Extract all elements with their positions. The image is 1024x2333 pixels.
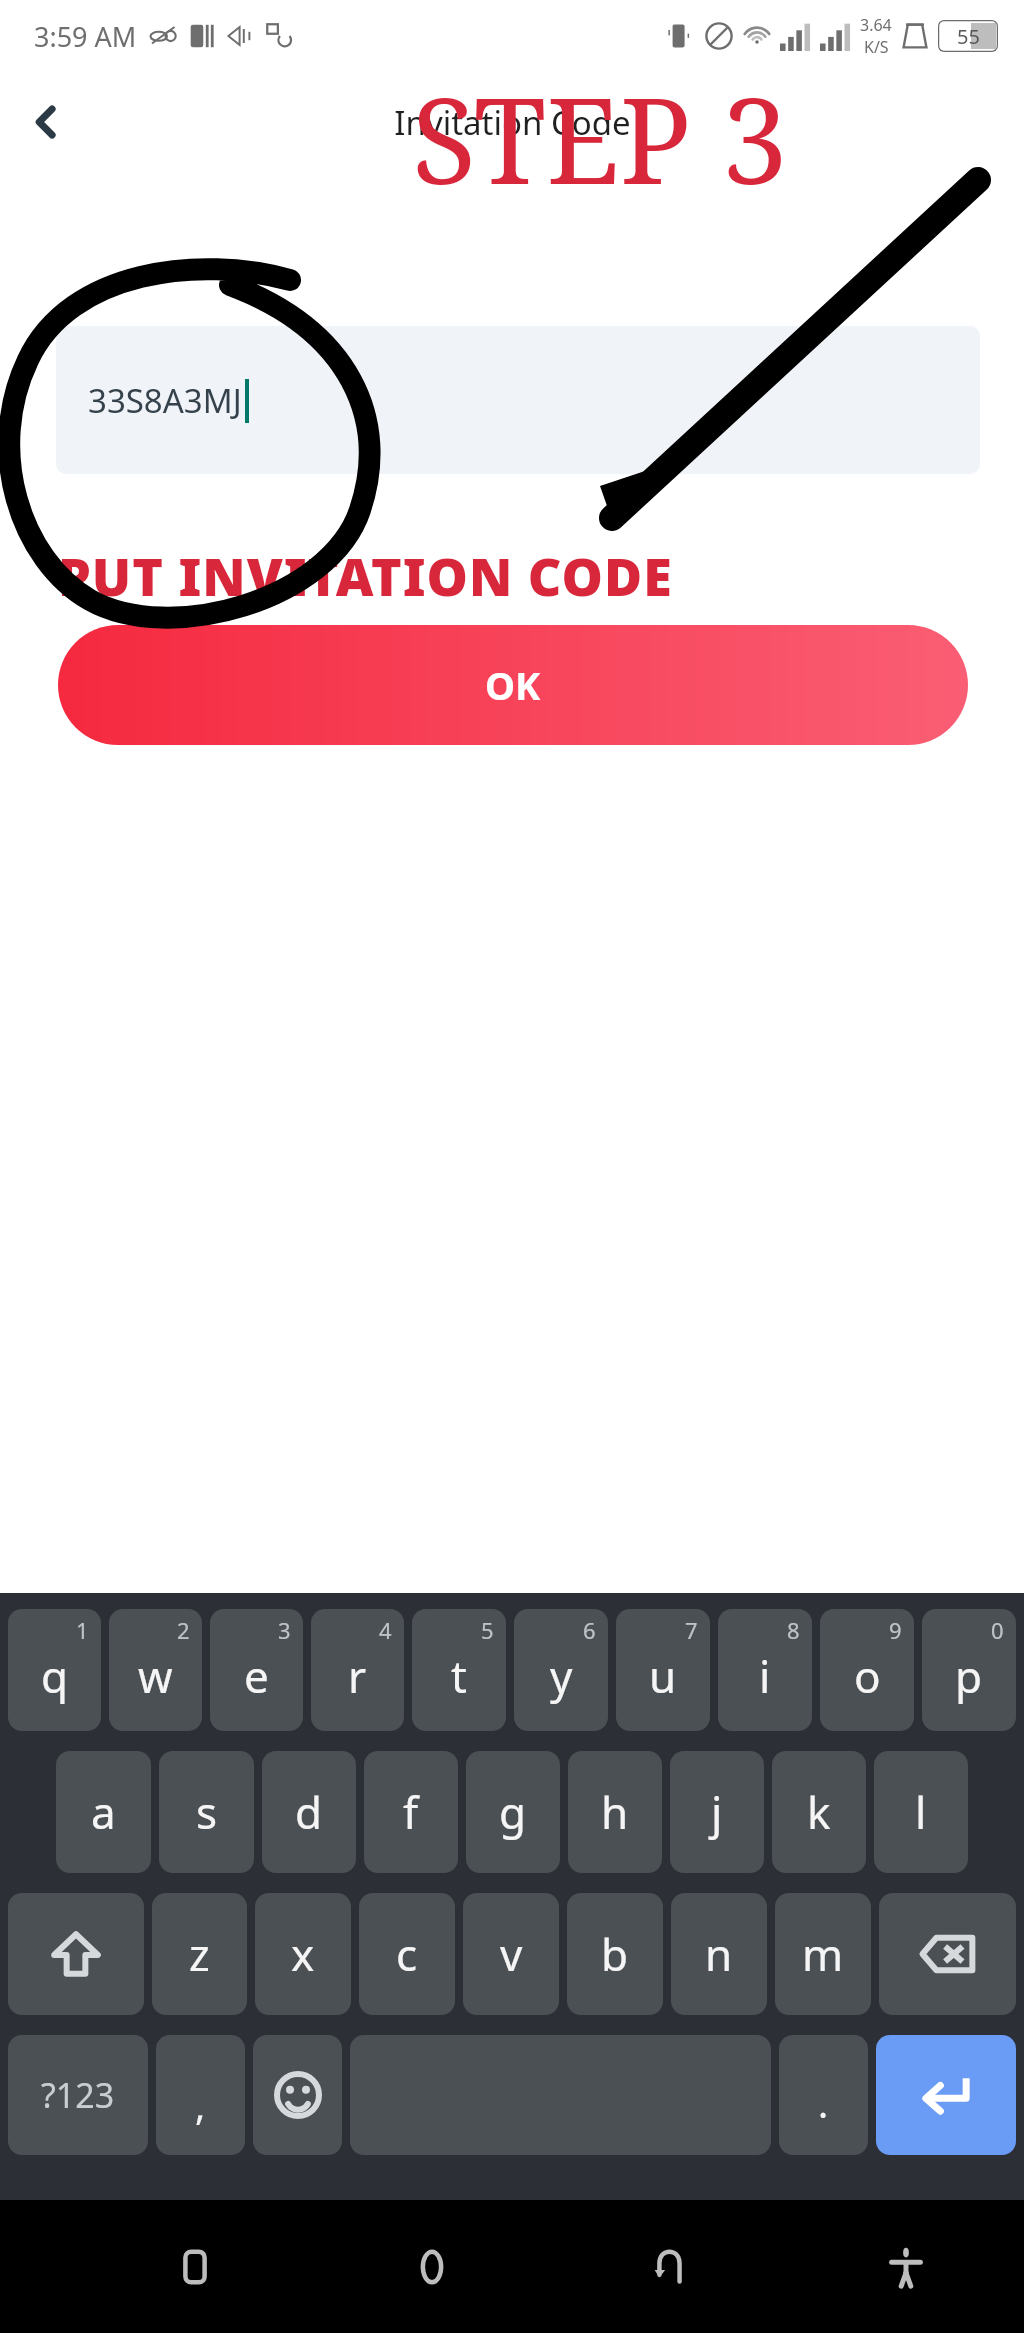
staticText: n <box>705 1924 733 1984</box>
staticText: b <box>601 1924 629 1984</box>
staticText: y <box>550 1646 573 1706</box>
button[interactable]: , <box>156 2035 245 2155</box>
staticText: 8 <box>787 1615 800 1645</box>
staticText: 6 <box>583 1615 596 1645</box>
button[interactable]: 0 <box>922 1609 1016 1731</box>
staticText: q <box>41 1646 69 1706</box>
staticText: , <box>195 2079 206 2131</box>
button[interactable]: Enter <box>876 2035 1016 2155</box>
staticText: o <box>854 1646 881 1706</box>
staticText: 2 <box>177 1615 190 1645</box>
staticText: a <box>91 1782 116 1842</box>
button[interactable]: 8 <box>718 1609 812 1731</box>
staticText: 1 <box>76 1615 89 1645</box>
button[interactable]: a <box>56 1751 151 1873</box>
staticText: x <box>291 1924 315 1984</box>
staticText: h <box>601 1782 629 1842</box>
button[interactable]: 1 <box>8 1609 101 1731</box>
staticText: i <box>759 1646 771 1706</box>
staticText: s <box>196 1782 218 1842</box>
button[interactable]: 4 <box>311 1609 404 1731</box>
staticText: 9 <box>889 1615 902 1645</box>
button[interactable]: . <box>779 2035 868 2155</box>
staticText: 7 <box>685 1615 698 1645</box>
staticText: w <box>138 1646 173 1706</box>
button[interactable]: h <box>568 1751 662 1873</box>
button[interactable]: 9 <box>820 1609 914 1731</box>
button[interactable]: j <box>670 1751 764 1873</box>
button[interactable]: 33S8A3MJ <box>56 326 980 474</box>
staticText: PUT INVITATION CODE <box>58 540 673 611</box>
button[interactable]: v <box>463 1893 559 2015</box>
button[interactable]: g <box>466 1751 560 1873</box>
button[interactable]: 2 <box>109 1609 202 1731</box>
staticText: k <box>807 1782 831 1842</box>
button[interactable]: f <box>364 1751 458 1873</box>
staticText: 5 <box>481 1615 494 1645</box>
button[interactable]: Back <box>16 92 76 152</box>
button[interactable]: s <box>159 1751 254 1873</box>
staticText: OK <box>485 659 541 711</box>
button[interactable]: Home <box>377 2212 487 2322</box>
button[interactable]: k <box>772 1751 866 1873</box>
staticText: t <box>451 1646 467 1706</box>
staticText: r <box>348 1646 367 1706</box>
staticText: ?123 <box>41 2072 115 2118</box>
button[interactable]: m <box>775 1893 871 2015</box>
button[interactable]: OK <box>58 625 968 745</box>
staticText: 3.64 <box>860 14 892 36</box>
button[interactable]: b <box>567 1893 663 2015</box>
staticText: g <box>499 1782 527 1842</box>
button[interactable]: Accessibility <box>851 2212 961 2322</box>
button[interactable]: z <box>152 1893 247 2015</box>
button[interactable]: Recents <box>140 2212 250 2322</box>
button[interactable]: c <box>359 1893 455 2015</box>
staticText: d <box>295 1782 323 1842</box>
staticText: l <box>915 1782 927 1842</box>
button[interactable]: l <box>874 1751 968 1873</box>
button[interactable]: 6 <box>514 1609 608 1731</box>
staticText: 33S8A3MJ <box>88 378 242 423</box>
staticText: 55 <box>957 23 980 50</box>
staticText: z <box>189 1924 210 1984</box>
button[interactable]: Backspace <box>879 1893 1016 2015</box>
staticText: v <box>500 1924 523 1984</box>
staticText: m <box>802 1924 844 1984</box>
staticText: c <box>396 1924 418 1984</box>
button[interactable]: ?123 <box>8 2035 148 2155</box>
staticText: e <box>244 1646 269 1706</box>
staticText: f <box>403 1782 419 1842</box>
staticText: 4 <box>379 1615 392 1645</box>
button[interactable]: x <box>255 1893 351 2015</box>
staticText: 0 <box>991 1615 1004 1645</box>
staticText: STEP 3 <box>412 58 788 219</box>
staticText: p <box>955 1646 983 1706</box>
button[interactable]: 3 <box>210 1609 303 1731</box>
staticText: u <box>649 1646 677 1706</box>
staticText: j <box>711 1782 723 1842</box>
staticText: 3:59 AM <box>34 18 137 55</box>
staticText: Invitation Code <box>394 100 631 145</box>
button[interactable]: Shift <box>8 1893 144 2015</box>
button[interactable]: Back <box>614 2212 724 2322</box>
button[interactable]: n <box>671 1893 767 2015</box>
staticText: . <box>818 2077 829 2129</box>
button[interactable]: Emoji <box>253 2035 342 2155</box>
staticText: 3 <box>278 1615 291 1645</box>
button[interactable]: d <box>262 1751 356 1873</box>
button[interactable]: 5 <box>412 1609 506 1731</box>
button[interactable]: 7 <box>616 1609 710 1731</box>
staticText: K/S <box>864 36 889 58</box>
